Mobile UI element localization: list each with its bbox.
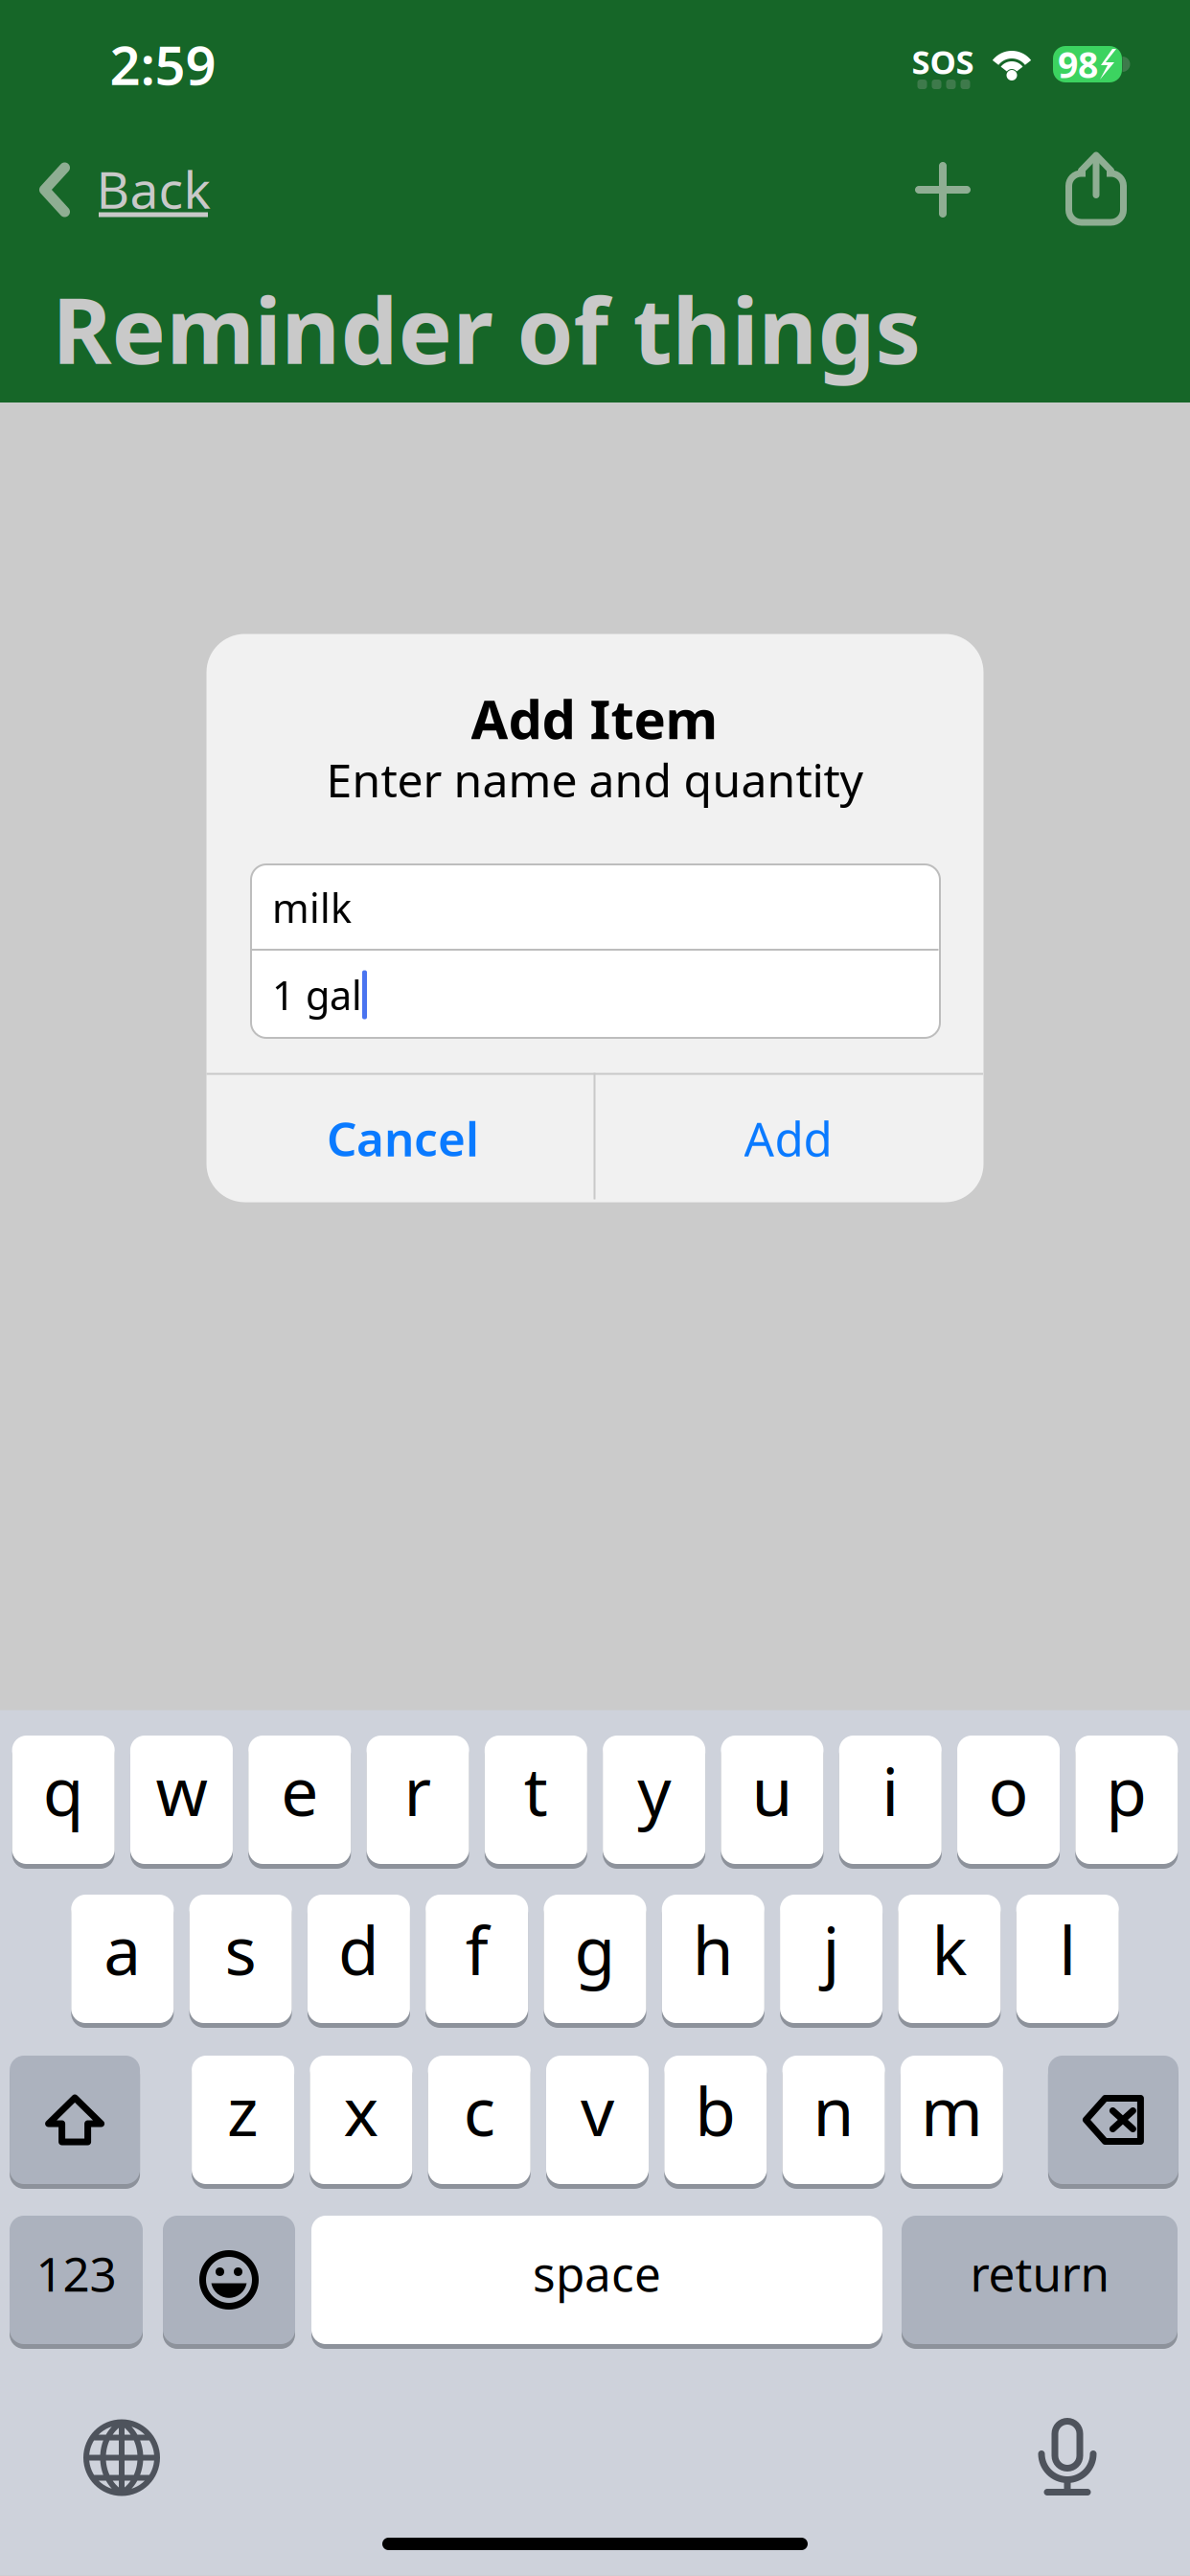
staticText: Enter name and quantity	[326, 749, 863, 810]
staticText: Back	[96, 155, 210, 223]
button[interactable]: d	[307, 1895, 410, 2028]
staticText: space	[533, 2242, 661, 2305]
button[interactable]: s	[189, 1895, 292, 2028]
button[interactable]: h	[662, 1895, 764, 2028]
button[interactable]: u	[721, 1736, 823, 1869]
staticText: f	[465, 1905, 488, 1993]
staticText: l	[1059, 1905, 1076, 1993]
button[interactable]: Delete	[1048, 2056, 1178, 2189]
button[interactable]: k	[898, 1895, 1001, 2028]
button[interactable]: Emoji	[163, 2216, 295, 2349]
button[interactable]: Cancel	[206, 634, 984, 1202]
staticText: Add	[744, 1107, 832, 1169]
button[interactable]: space	[311, 2216, 882, 2349]
staticText: a	[104, 1905, 141, 1993]
button[interactable]: j	[780, 1895, 883, 2028]
staticText: milk	[272, 881, 352, 934]
staticText: e	[281, 1746, 318, 1834]
staticText: s	[225, 1905, 256, 1993]
staticText: return	[970, 2242, 1109, 2305]
staticText: o	[988, 1746, 1029, 1834]
staticText: p	[1106, 1746, 1147, 1834]
button[interactable]: Switch keyboard	[0, 1710, 1190, 2576]
staticText: 1 gal	[272, 968, 362, 1021]
button[interactable]: m	[901, 2056, 1003, 2189]
staticText: n	[813, 2066, 854, 2154]
staticText: g	[574, 1905, 616, 1993]
button[interactable]: e	[248, 1736, 351, 1869]
button[interactable]: Share	[0, 0, 1190, 280]
button[interactable]: l	[1016, 1895, 1119, 2028]
button[interactable]: c	[428, 2056, 531, 2189]
staticText: m	[921, 2066, 983, 2154]
button[interactable]: Add	[0, 0, 1190, 280]
staticText: 2:59	[110, 29, 216, 100]
button[interactable]: b	[664, 2056, 767, 2189]
button[interactable]: 123	[10, 2216, 143, 2349]
staticText: j	[823, 1905, 840, 1993]
button[interactable]: o	[957, 1736, 1060, 1869]
staticText: q	[43, 1746, 84, 1834]
staticText: t	[524, 1746, 548, 1834]
button[interactable]: t	[485, 1736, 587, 1869]
staticText: k	[932, 1905, 967, 1993]
staticText: z	[227, 2066, 259, 2154]
button[interactable]: Shift	[10, 2056, 140, 2189]
staticText: x	[343, 2066, 379, 2154]
button[interactable]: n	[782, 2056, 885, 2189]
staticText: w	[156, 1746, 207, 1834]
staticText: b	[695, 2066, 736, 2154]
button[interactable]: y	[603, 1736, 705, 1869]
staticText: y	[637, 1746, 671, 1834]
button[interactable]: x	[310, 2056, 412, 2189]
button[interactable]: w	[130, 1736, 233, 1869]
button[interactable]: z	[192, 2056, 294, 2189]
staticText: h	[693, 1905, 734, 1993]
staticText: r	[404, 1746, 432, 1834]
staticText: SOS	[912, 39, 974, 83]
staticText: d	[338, 1905, 379, 1993]
staticText: Cancel	[327, 1107, 479, 1169]
button[interactable]: Back	[0, 0, 1190, 280]
button[interactable]: g	[544, 1895, 646, 2028]
button[interactable]: i	[839, 1736, 942, 1869]
button[interactable]: r	[366, 1736, 469, 1869]
button[interactable]: p	[1075, 1736, 1178, 1869]
button[interactable]: q	[12, 1736, 115, 1869]
staticText: 123	[36, 2242, 116, 2305]
staticText: v	[581, 2066, 614, 2154]
button[interactable]: return	[902, 2216, 1178, 2349]
button[interactable]: v	[546, 2056, 649, 2189]
button[interactable]: a	[71, 1895, 174, 2028]
staticText: Add Item	[471, 683, 718, 754]
staticText: i	[882, 1746, 899, 1834]
staticText: Reminder of things	[52, 268, 921, 389]
staticText: u	[752, 1746, 793, 1834]
staticText: c	[463, 2066, 495, 2154]
button[interactable]: f	[426, 1895, 528, 2028]
button[interactable]: Add	[206, 634, 984, 1202]
button[interactable]: Dictation	[0, 1710, 1190, 2576]
staticText: 98	[1058, 40, 1098, 88]
